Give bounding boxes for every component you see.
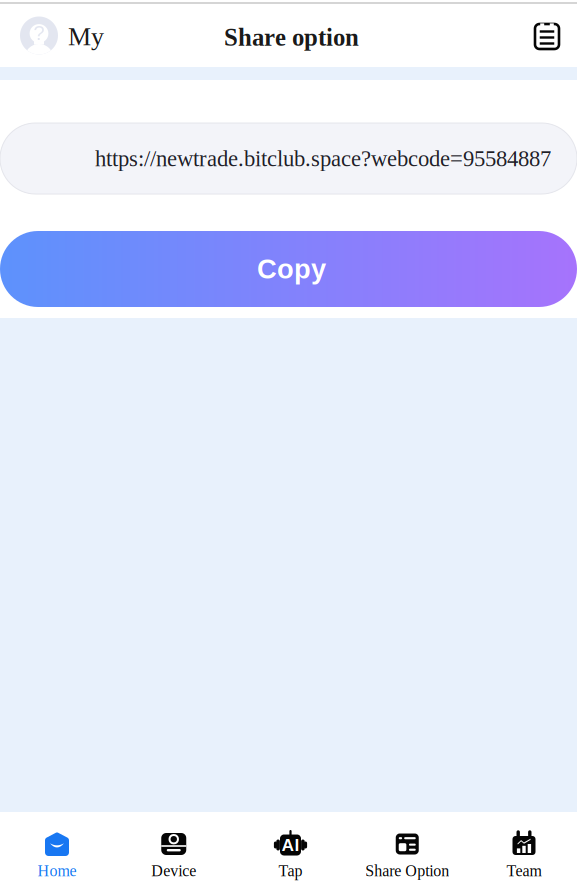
staticText: Copy (257, 254, 326, 284)
staticText: Home (37, 862, 76, 880)
staticText: My (68, 22, 104, 51)
button[interactable]: AI (232, 812, 349, 889)
staticText: AI (281, 835, 299, 855)
button[interactable]: Team (466, 812, 577, 889)
staticText: Device (151, 862, 196, 880)
button[interactable]: Copy (0, 231, 577, 307)
button[interactable]: ? (0, 16, 104, 54)
button[interactable]: Device (115, 812, 232, 889)
staticText: Share Option (365, 862, 449, 880)
button[interactable]: Records (532, 19, 577, 51)
staticText: ? (33, 22, 44, 44)
staticText: Team (506, 862, 541, 880)
staticText: Tap (278, 862, 302, 880)
button[interactable]: Home (0, 812, 115, 889)
button[interactable]: Share Option (349, 812, 466, 889)
staticText: Share option (224, 24, 359, 51)
staticText: https://newtrade.bitclub.space?webcode=9… (95, 146, 551, 171)
